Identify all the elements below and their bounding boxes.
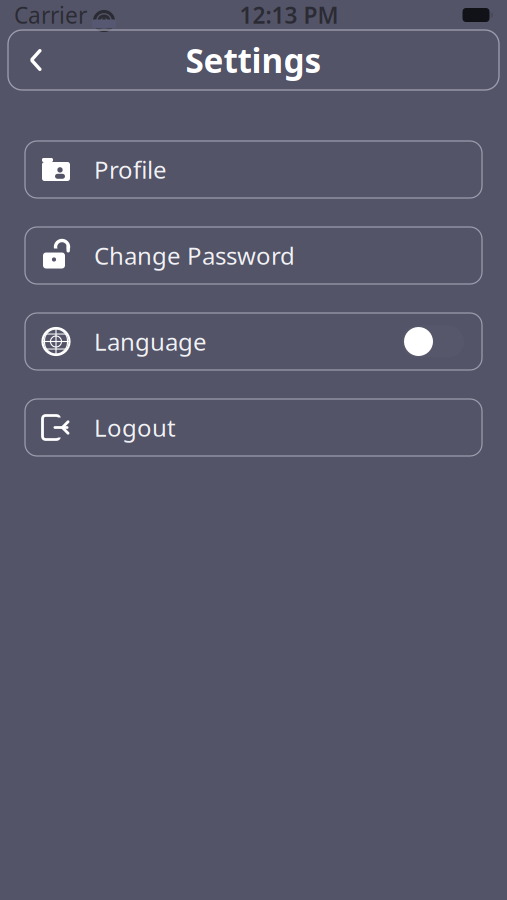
staticText: Settings [185,38,321,82]
staticText: Profile [94,154,167,185]
staticText: Logout [94,412,176,443]
staticText: Change Password [94,240,295,271]
button[interactable]: Back [8,31,64,89]
button[interactable]: Logout [25,399,482,456]
button[interactable]: Language [25,313,482,370]
button[interactable]: Change Password [25,227,482,284]
staticText: Carrier [14,0,87,30]
staticText: Language [94,326,207,357]
button[interactable]: Profile [25,141,482,198]
staticText: 12:13 PM [239,0,338,30]
